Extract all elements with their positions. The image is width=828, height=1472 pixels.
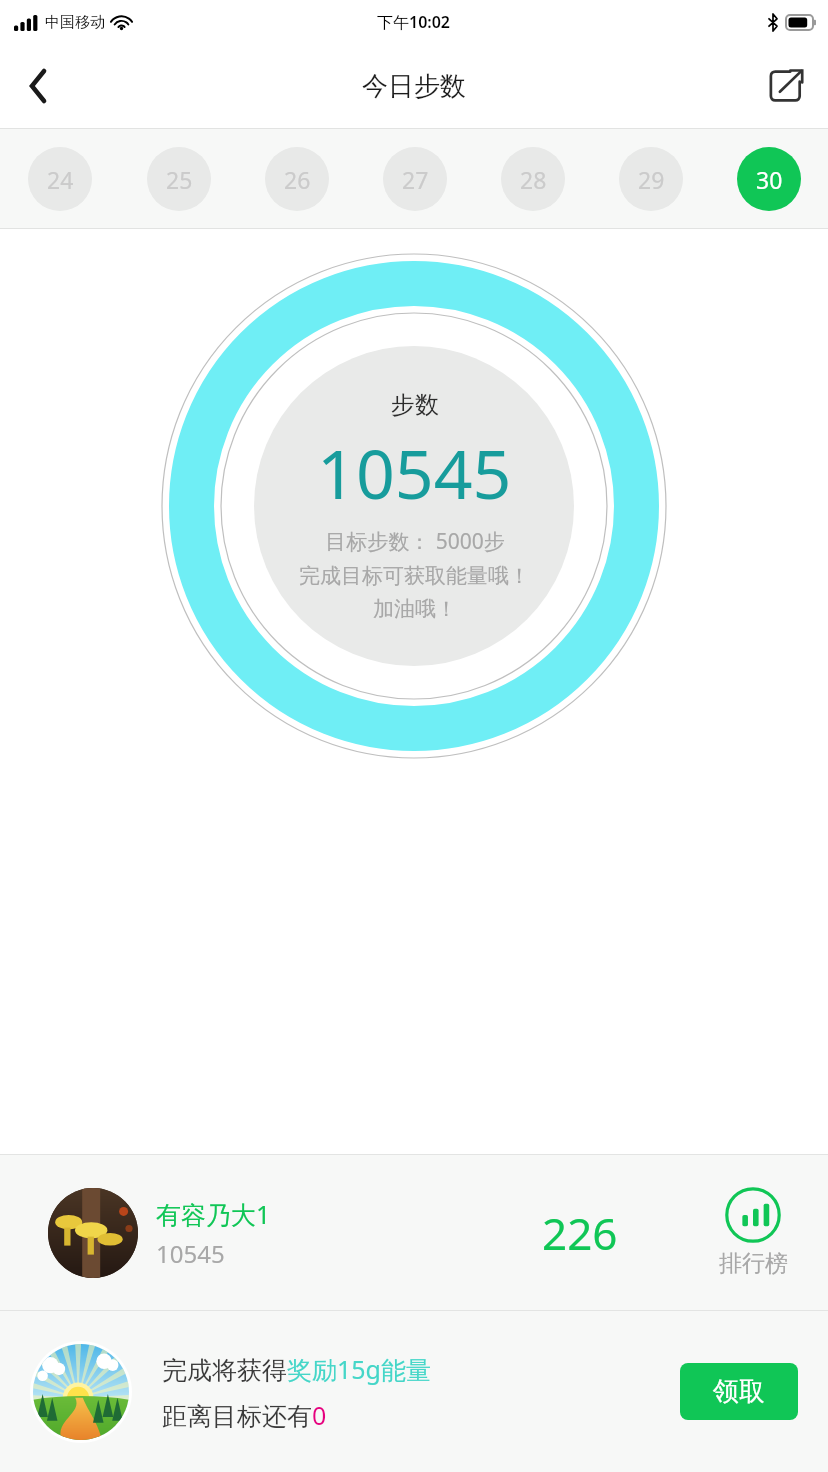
staticText: 10545 [317,426,512,519]
button[interactable]: 28 [501,147,565,211]
staticText: 完成将获得奖励15g能量 [162,1352,431,1386]
staticText: 领取 [713,1375,765,1408]
staticText: 距离目标还有0 [162,1398,327,1432]
staticText: 30 [756,164,783,195]
staticText: 有容乃大1 [156,1197,271,1231]
button[interactable]: 29 [619,147,683,211]
staticText: 29 [638,164,665,195]
staticText: 中国移动 [45,13,105,32]
staticText: 加油哦！ [373,596,457,622]
button[interactable]: 24 [28,147,92,211]
staticText: 25 [166,164,193,195]
staticText: 目标步数： 5000步 [325,527,505,556]
staticText: 10545 [156,1237,225,1270]
staticText: 下午10:02 [377,11,451,33]
staticText: 今日步数 [362,70,466,103]
button[interactable]: 有容乃大1 [48,1188,542,1278]
button[interactable]: 30 [737,147,801,211]
button[interactable]: 26 [265,147,329,211]
button[interactable]: 分享 [758,58,814,114]
button[interactable]: 排行榜 [678,1187,828,1278]
staticText: 24 [47,164,74,195]
staticText: 28 [520,164,547,195]
staticText: 226 [542,1203,618,1263]
staticText: 27 [402,164,429,195]
button[interactable]: 返回 [0,48,76,124]
staticText: 26 [284,164,311,195]
button[interactable]: 领取 [680,1363,798,1420]
staticText: 完成目标可获取能量哦！ [299,563,530,589]
staticText: 排行榜 [719,1249,788,1278]
button[interactable]: 25 [147,147,211,211]
button[interactable]: 27 [383,147,447,211]
staticText: 步数 [391,390,439,420]
